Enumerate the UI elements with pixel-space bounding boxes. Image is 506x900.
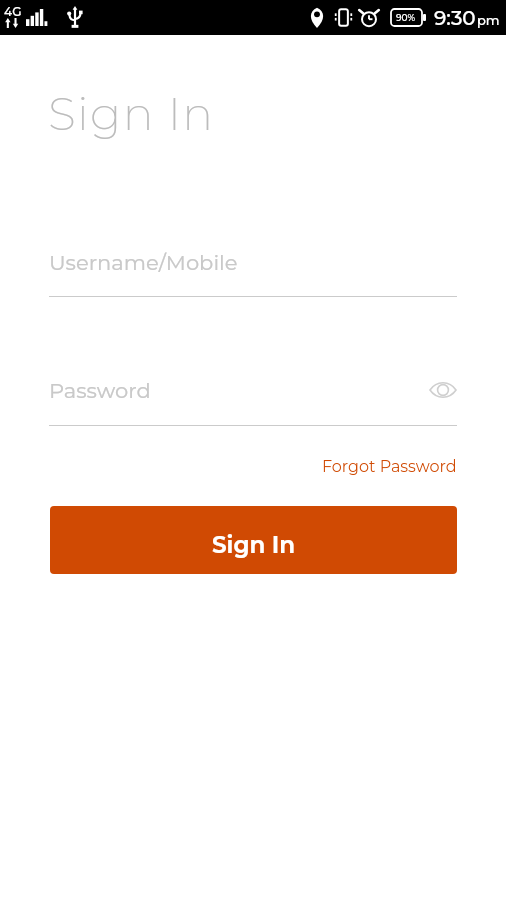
staticText: 90% — [396, 12, 416, 23]
staticText: Username/Mobile — [49, 250, 238, 276]
button[interactable]: Sign In — [50, 506, 457, 574]
staticText: 9:30 — [434, 6, 476, 30]
button[interactable]: Forgot Password — [322, 457, 457, 477]
staticText: Sign In — [212, 531, 296, 559]
staticText: Sign In — [48, 85, 215, 141]
button[interactable]: Show password — [427, 377, 459, 402]
staticText: pm — [477, 12, 500, 28]
staticText: 4G — [4, 4, 22, 19]
staticText: Password — [49, 378, 151, 404]
